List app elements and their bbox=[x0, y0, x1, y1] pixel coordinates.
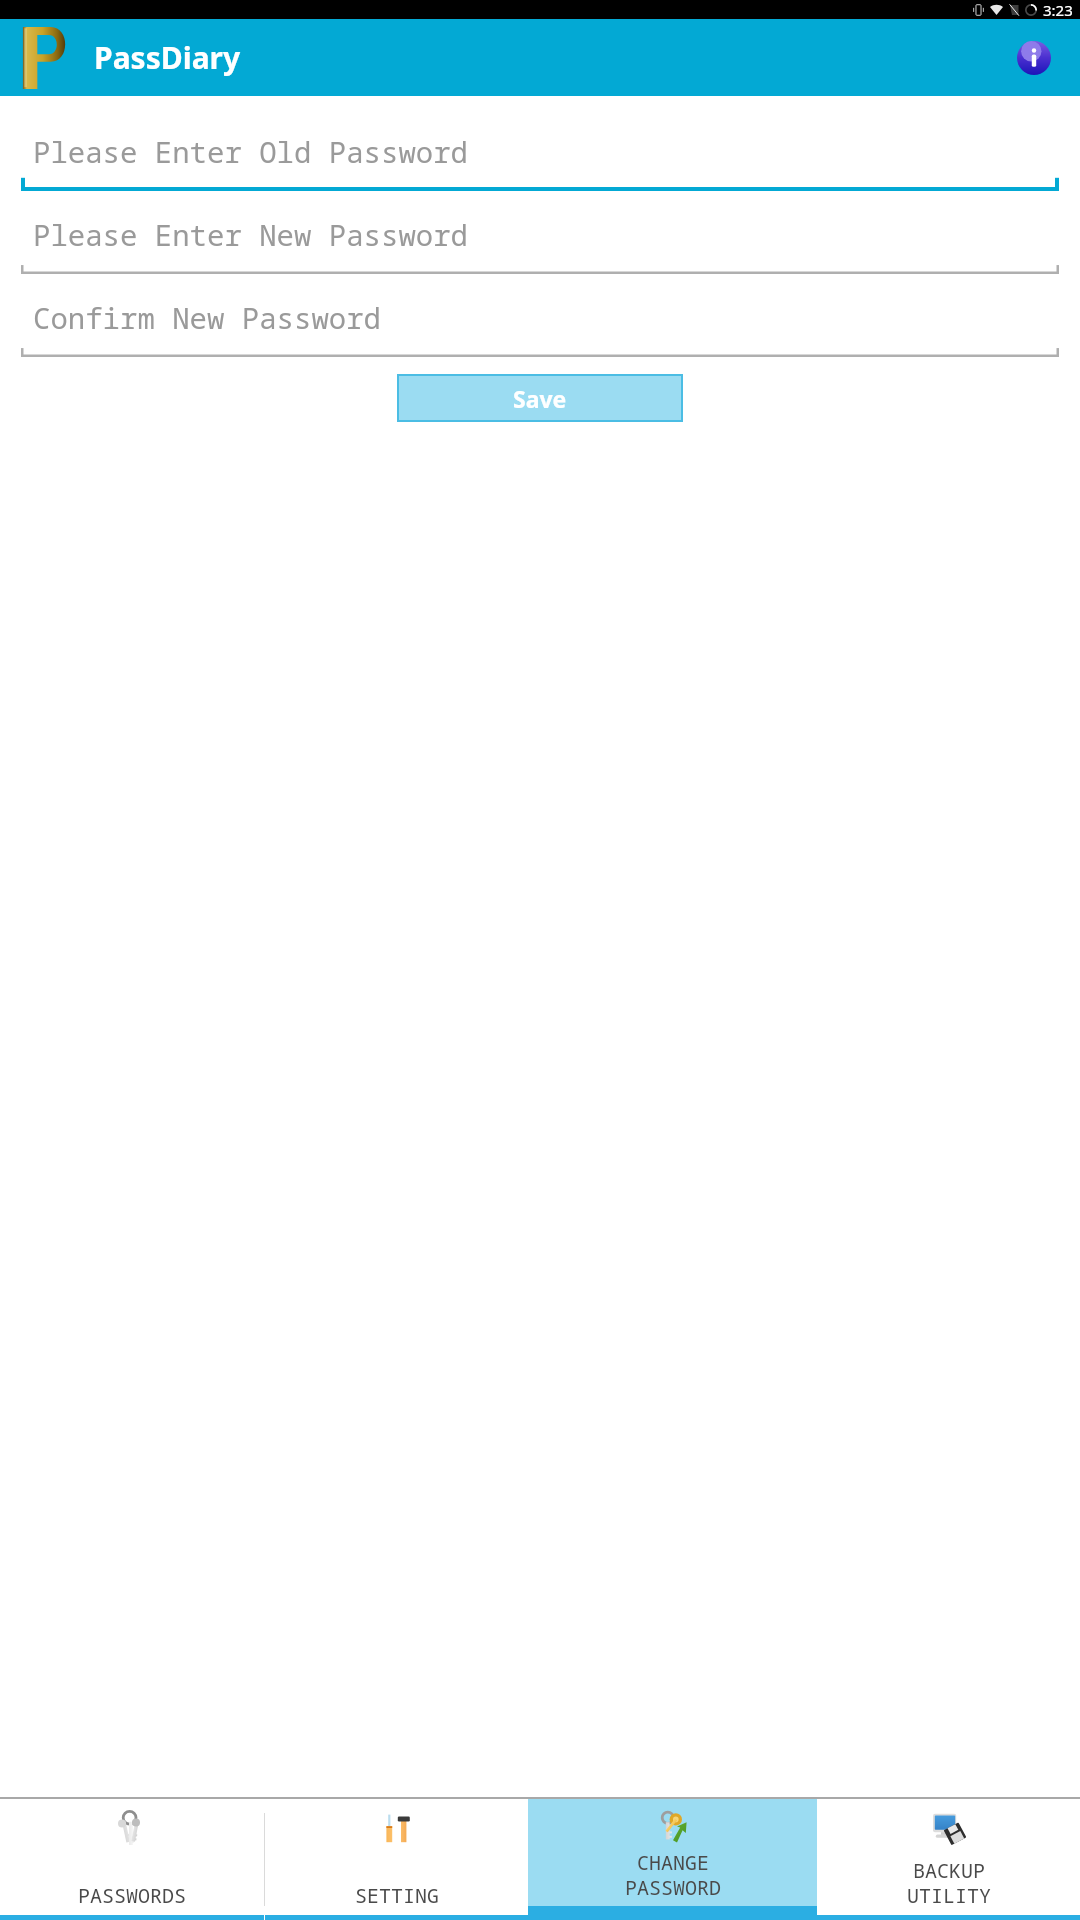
button[interactable]: SETTING bbox=[265, 1799, 528, 1920]
button[interactable]: CHANGE PASSWORD bbox=[528, 1799, 817, 1920]
staticText: BACKUP UTILITY bbox=[907, 1857, 991, 1909]
staticText: Save bbox=[513, 383, 567, 414]
staticText: Confirm New Password bbox=[33, 298, 382, 337]
button[interactable]: Information bbox=[1012, 36, 1056, 80]
staticText: Please Enter New Password bbox=[33, 215, 469, 254]
staticText: 3:23 bbox=[1043, 0, 1073, 19]
staticText: PASSWORDS bbox=[78, 1882, 186, 1909]
staticText: Please Enter Old Password bbox=[33, 132, 469, 171]
staticText: PassDiary bbox=[94, 37, 241, 78]
button[interactable]: Save bbox=[397, 374, 683, 422]
staticText: SETTING bbox=[355, 1882, 439, 1909]
button[interactable]: PASSWORDS bbox=[0, 1799, 264, 1920]
button[interactable]: BACKUP UTILITY bbox=[817, 1799, 1080, 1920]
button[interactable]: Please Enter Old Password bbox=[21, 122, 1059, 191]
staticText: CHANGE PASSWORD bbox=[625, 1849, 721, 1901]
button[interactable]: Please Enter New Password bbox=[21, 205, 1059, 274]
button[interactable]: Confirm New Password bbox=[21, 288, 1059, 357]
